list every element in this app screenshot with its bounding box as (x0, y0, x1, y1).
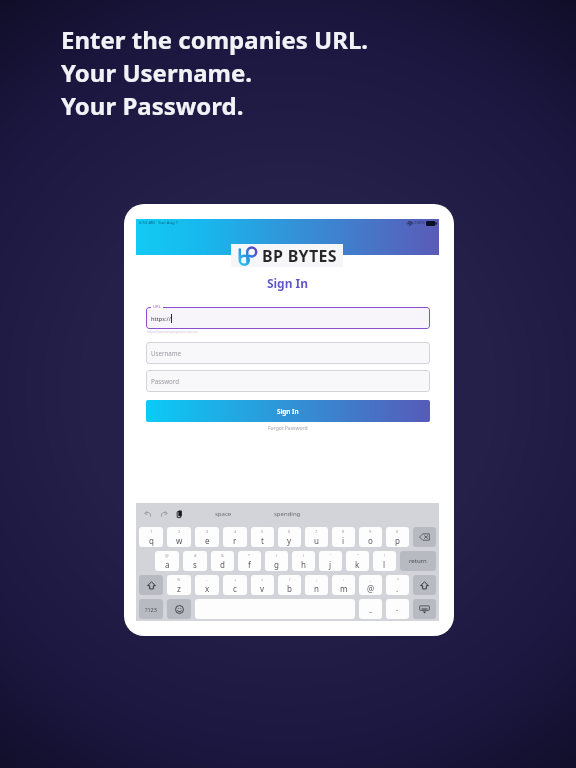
staticText: o (368, 535, 373, 546)
button[interactable]: Emoji (167, 599, 191, 619)
staticText: q (149, 535, 154, 546)
button[interactable]: Backspace (413, 527, 436, 547)
staticText: # (194, 553, 197, 558)
button[interactable]: Username (146, 342, 430, 364)
staticText: / (289, 577, 291, 582)
button[interactable]: space (215, 510, 232, 518)
staticText: e (205, 535, 210, 546)
staticText: ) (303, 553, 305, 558)
staticText: z (177, 583, 181, 594)
staticText: + (234, 577, 237, 582)
button[interactable]: ? (386, 575, 409, 595)
staticText: Your Username. (61, 56, 253, 89)
button[interactable]: ! (373, 551, 396, 571)
button[interactable]: 9 (359, 527, 382, 547)
staticText: s (193, 559, 197, 570)
button[interactable]: , (359, 575, 382, 595)
staticText: Username (151, 349, 182, 357)
button[interactable]: * (238, 551, 261, 571)
button[interactable]: Undo (143, 509, 153, 519)
staticText: https://yourcompanyname.com.au (147, 330, 198, 334)
staticText: 5 (261, 529, 264, 534)
button[interactable]: Password (146, 370, 430, 392)
staticText: 6:53 AM Sun Aug 1 (139, 220, 179, 226)
staticText: _ (369, 605, 372, 614)
button[interactable]: : (332, 575, 355, 595)
button[interactable]: 6 (278, 527, 301, 547)
button[interactable]: & (211, 551, 234, 571)
staticText: . (396, 583, 399, 594)
staticText: URL (153, 304, 161, 310)
button[interactable]: + (223, 575, 247, 595)
staticText: & (221, 553, 224, 558)
button[interactable]: 7 (305, 527, 328, 547)
staticText: n (314, 583, 319, 594)
staticText: Password (151, 377, 179, 385)
staticText: ; (316, 577, 318, 582)
button[interactable]: / (278, 575, 301, 595)
button[interactable]: 1 (139, 527, 163, 547)
button[interactable]: https:// (146, 307, 430, 329)
staticText: f (248, 559, 251, 570)
staticText: d (220, 559, 225, 570)
staticText: ! (384, 553, 386, 558)
staticText: space (215, 510, 232, 518)
button[interactable]: Shift (139, 575, 163, 595)
staticText: = (261, 577, 264, 582)
staticText: https:// (151, 315, 171, 323)
staticText: c (233, 583, 237, 594)
button[interactable]: ( (265, 551, 288, 571)
staticText: l (383, 559, 386, 570)
button[interactable]: Paste (175, 509, 185, 519)
staticText: i (342, 535, 345, 546)
button[interactable]: @ (155, 551, 179, 571)
button[interactable]: 0 (386, 527, 409, 547)
staticText: u (314, 535, 319, 546)
button[interactable]: = (251, 575, 274, 595)
button[interactable]: spending (274, 510, 301, 518)
button[interactable]: 3 (195, 527, 219, 547)
button[interactable]: Hide keyboard (413, 599, 436, 619)
button[interactable]: ) (292, 551, 315, 571)
staticText: @ (367, 583, 375, 594)
button[interactable]: ?123 (139, 599, 163, 619)
staticText: Your Password. (61, 89, 244, 122)
button[interactable]: % (167, 575, 191, 595)
staticText: ' (330, 553, 331, 558)
staticText: 1 (150, 529, 153, 534)
staticText: 6 (288, 529, 291, 534)
button[interactable]: # (183, 551, 207, 571)
staticText: Forgot Password (268, 425, 308, 432)
staticText: , (370, 577, 372, 582)
button[interactable]: return (400, 551, 436, 571)
button[interactable]: Shift (413, 575, 436, 595)
staticText: ? (397, 577, 399, 582)
staticText: - (206, 577, 208, 582)
staticText: 9 (369, 529, 372, 534)
button[interactable]: - (386, 599, 409, 619)
staticText: * (248, 553, 251, 558)
button[interactable]: 2 (167, 527, 191, 547)
staticText: j (329, 559, 332, 570)
staticText: ?123 (145, 606, 157, 613)
button[interactable]: 4 (223, 527, 247, 547)
staticText: w (176, 535, 183, 546)
staticText: @ (165, 553, 169, 558)
button[interactable]: _ (359, 599, 382, 619)
staticText: p (395, 535, 400, 546)
button[interactable]: Sign In (146, 400, 430, 422)
staticText: k (355, 559, 360, 570)
button[interactable]: - (195, 575, 219, 595)
button[interactable]: ' (319, 551, 342, 571)
button[interactable]: 5 (251, 527, 274, 547)
button[interactable]: Forgot Password (136, 425, 439, 432)
button[interactable]: 8 (332, 527, 355, 547)
button[interactable]: Redo (159, 509, 169, 519)
button[interactable]: ; (305, 575, 328, 595)
button[interactable]: " (346, 551, 369, 571)
staticText: v (260, 583, 265, 594)
staticText: Enter the companies URL. (61, 23, 369, 56)
staticText: ( (276, 553, 278, 558)
staticText: BP BYTES (262, 245, 337, 267)
